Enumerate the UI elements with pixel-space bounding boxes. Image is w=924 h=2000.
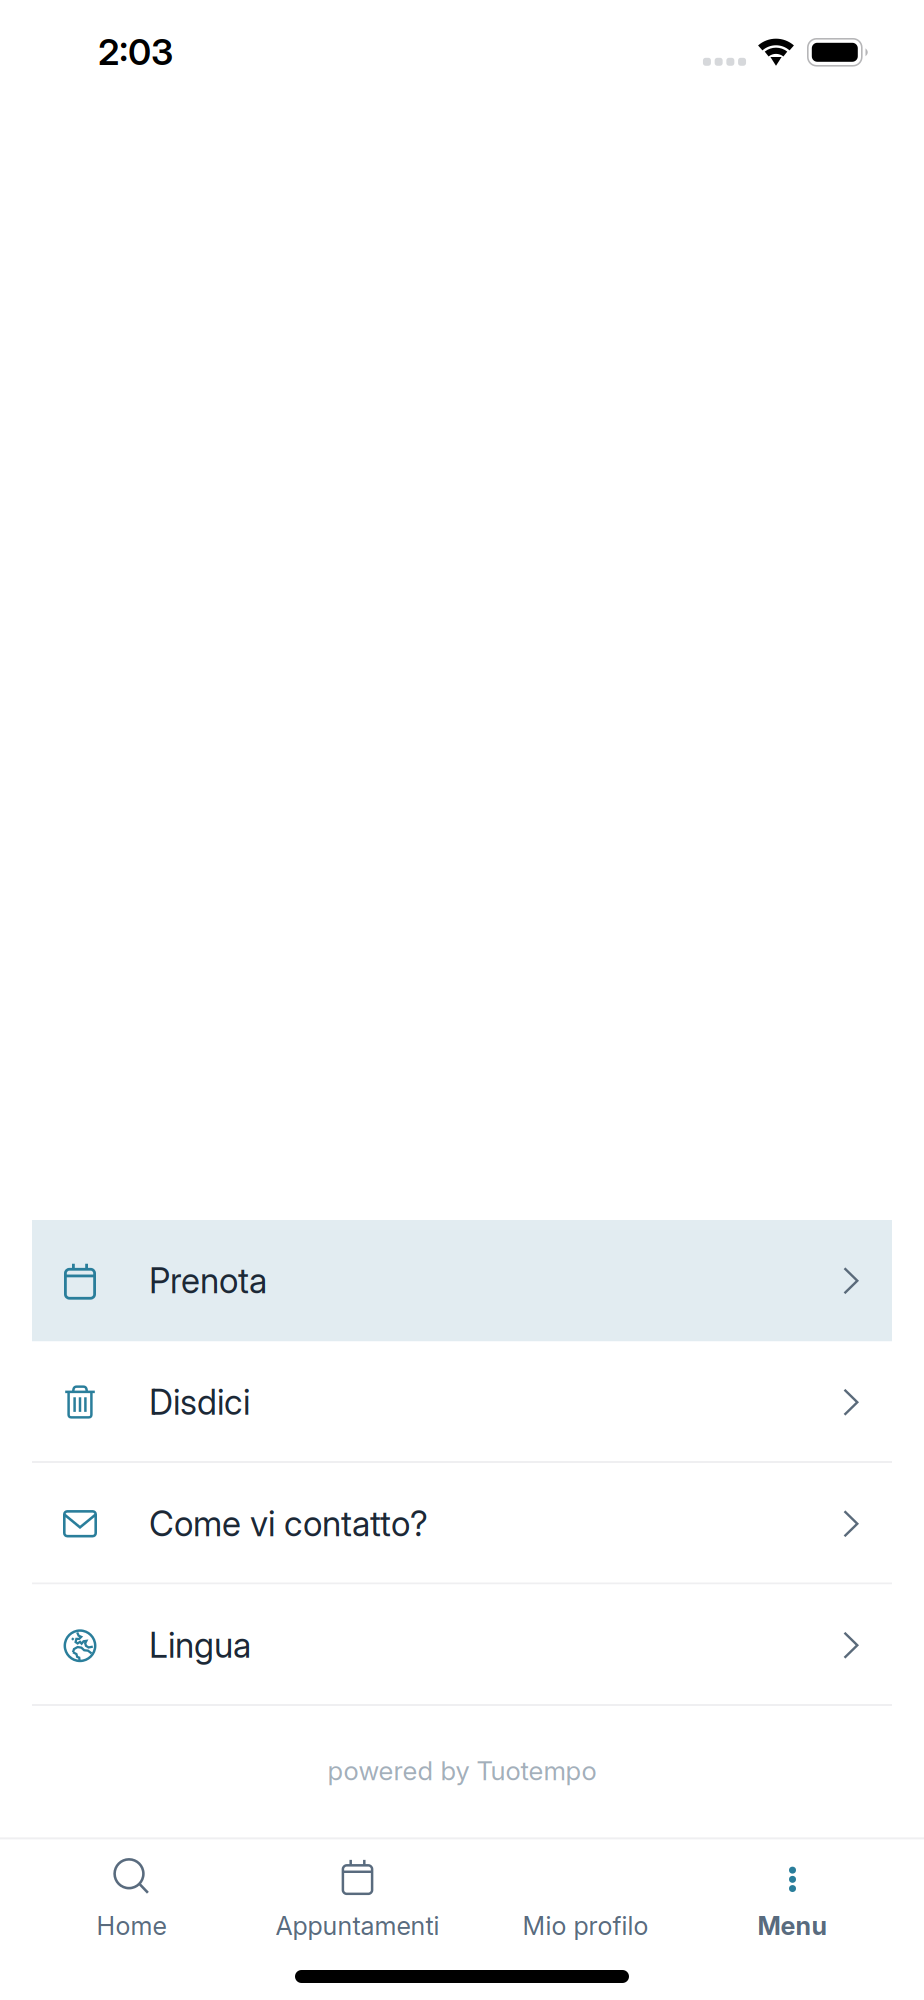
- button[interactable]: Prenota: [32, 1220, 892, 1341]
- staticText: Disdici: [149, 1381, 250, 1423]
- button[interactable]: Home: [20, 1857, 241, 1941]
- button[interactable]: Menu: [683, 1857, 904, 1941]
- staticText: Mio profilo: [522, 1910, 648, 1941]
- staticText: Lingua: [149, 1624, 251, 1666]
- staticText: Menu: [757, 1910, 827, 1941]
- button[interactable]: Come vi contatto?: [32, 1463, 892, 1584]
- staticText: Prenota: [149, 1260, 267, 1301]
- button[interactable]: Lingua: [32, 1584, 892, 1706]
- staticText: powered by Tuotempo: [327, 1755, 596, 1786]
- button[interactable]: Disdici: [32, 1341, 892, 1463]
- staticText: Come vi contatto?: [149, 1503, 428, 1544]
- button[interactable]: Mio profilo: [462, 1857, 683, 1941]
- staticText: Appuntamenti: [275, 1910, 439, 1941]
- button[interactable]: Appuntamenti: [241, 1857, 462, 1941]
- staticText: Home: [96, 1910, 166, 1941]
- staticText: 2:03: [98, 30, 173, 74]
